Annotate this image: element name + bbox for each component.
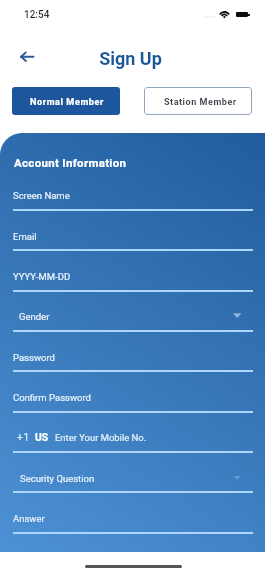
staticText: 12:54 [24, 9, 50, 21]
staticText: Security Question [20, 473, 95, 484]
button[interactable] [13, 426, 253, 452]
staticText: Confirm Password [13, 392, 91, 403]
staticText: Enter Your Mobile No. [55, 432, 147, 443]
button[interactable] [13, 506, 253, 532]
staticText: Station Member [164, 97, 237, 108]
staticText: +1 [17, 432, 30, 444]
staticText: Normal Member [30, 97, 104, 108]
staticText: Sign Up [0, 48, 263, 69]
staticText: Screen Name [13, 190, 70, 201]
button[interactable]: Normal Member [12, 87, 120, 115]
button[interactable] [13, 184, 253, 210]
staticText: US [35, 431, 49, 443]
staticText: Email [13, 231, 37, 242]
button[interactable] [13, 345, 253, 371]
button[interactable] [13, 224, 253, 250]
button[interactable] [13, 264, 253, 290]
staticText: Gender [19, 311, 50, 322]
button[interactable] [13, 305, 253, 331]
staticText: Answer [13, 513, 45, 524]
staticText: Password [13, 352, 55, 363]
button[interactable] [13, 466, 253, 492]
button[interactable] [13, 385, 253, 411]
staticText: Account Information [14, 156, 127, 169]
staticText: YYYY-MM-DD [13, 271, 71, 282]
button[interactable]: Back [13, 43, 41, 71]
button[interactable]: Station Member [144, 87, 252, 115]
